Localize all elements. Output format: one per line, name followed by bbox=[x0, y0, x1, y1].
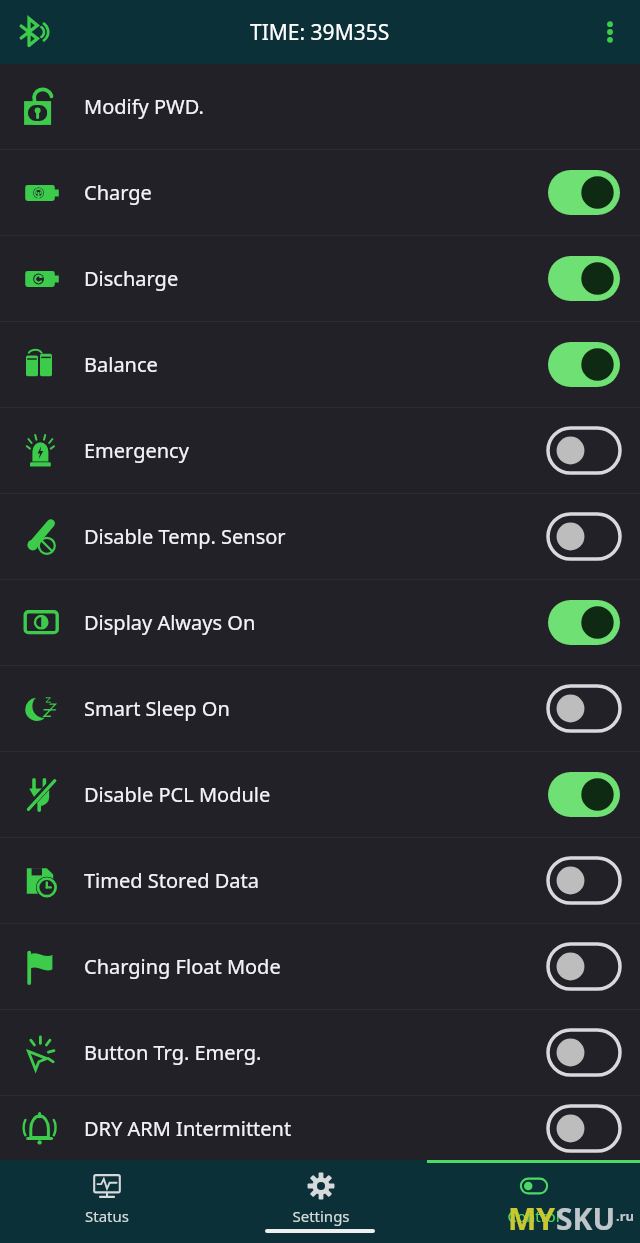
button[interactable]: Control bbox=[427, 1160, 640, 1243]
button[interactable]: Balance bbox=[0, 322, 640, 407]
staticText: Disable Temp. Sensor bbox=[84, 523, 548, 550]
staticText: Discharge bbox=[84, 265, 548, 292]
staticText: MY bbox=[508, 1198, 556, 1239]
button[interactable]: On bbox=[548, 600, 620, 645]
button[interactable]: Status bbox=[0, 1160, 214, 1243]
staticText: Disable PCL Module bbox=[84, 781, 548, 808]
button[interactable]: Button Trg. Emerg. bbox=[0, 1010, 640, 1095]
staticText: TIME: 39M35S bbox=[250, 18, 390, 47]
staticText: Balance bbox=[84, 351, 548, 378]
button[interactable]: Modify PWD. bbox=[0, 64, 640, 149]
button[interactable]: Disable Temp. Sensor bbox=[0, 494, 640, 579]
button[interactable]: Off bbox=[548, 944, 620, 989]
button[interactable]: Bluetooth bbox=[8, 8, 56, 56]
staticText: Emergency bbox=[84, 437, 548, 464]
button[interactable]: Emergency bbox=[0, 408, 640, 493]
button[interactable]: Charge bbox=[0, 150, 640, 235]
button[interactable]: Charging Float Mode bbox=[0, 924, 640, 1009]
staticText: Status bbox=[85, 1206, 129, 1226]
button[interactable]: More options bbox=[586, 8, 634, 56]
staticText: Timed Stored Data bbox=[84, 867, 548, 894]
staticText: .ru bbox=[616, 1207, 634, 1225]
button[interactable]: Off bbox=[548, 858, 620, 903]
button[interactable]: Display Always On bbox=[0, 580, 640, 665]
staticText: Smart Sleep On bbox=[84, 695, 548, 722]
button[interactable]: On bbox=[548, 342, 620, 387]
staticText: Settings bbox=[292, 1206, 350, 1226]
staticText: Charging Float Mode bbox=[84, 953, 548, 980]
button[interactable]: Discharge bbox=[0, 236, 640, 321]
button[interactable]: DRY ARM Intermittent bbox=[0, 1096, 640, 1160]
staticText: SKU bbox=[556, 1198, 616, 1239]
button[interactable]: Smart Sleep On bbox=[0, 666, 640, 751]
staticText: DRY ARM Intermittent bbox=[84, 1115, 548, 1142]
button[interactable]: Off bbox=[548, 428, 620, 473]
staticText: Modify PWD. bbox=[84, 93, 640, 120]
button[interactable]: Off bbox=[548, 686, 620, 731]
button[interactable]: On bbox=[548, 170, 620, 215]
staticText: Display Always On bbox=[84, 609, 548, 636]
staticText: Button Trg. Emerg. bbox=[84, 1039, 548, 1066]
button[interactable]: On bbox=[548, 256, 620, 301]
button[interactable]: Off bbox=[548, 1106, 620, 1151]
button[interactable]: Off bbox=[548, 514, 620, 559]
button[interactable]: Settings bbox=[214, 1160, 427, 1243]
button[interactable]: Timed Stored Data bbox=[0, 838, 640, 923]
staticText: Control bbox=[507, 1206, 560, 1226]
button[interactable]: Disable PCL Module bbox=[0, 752, 640, 837]
button[interactable]: On bbox=[548, 772, 620, 817]
button[interactable]: Off bbox=[548, 1030, 620, 1075]
staticText: Charge bbox=[84, 179, 548, 206]
